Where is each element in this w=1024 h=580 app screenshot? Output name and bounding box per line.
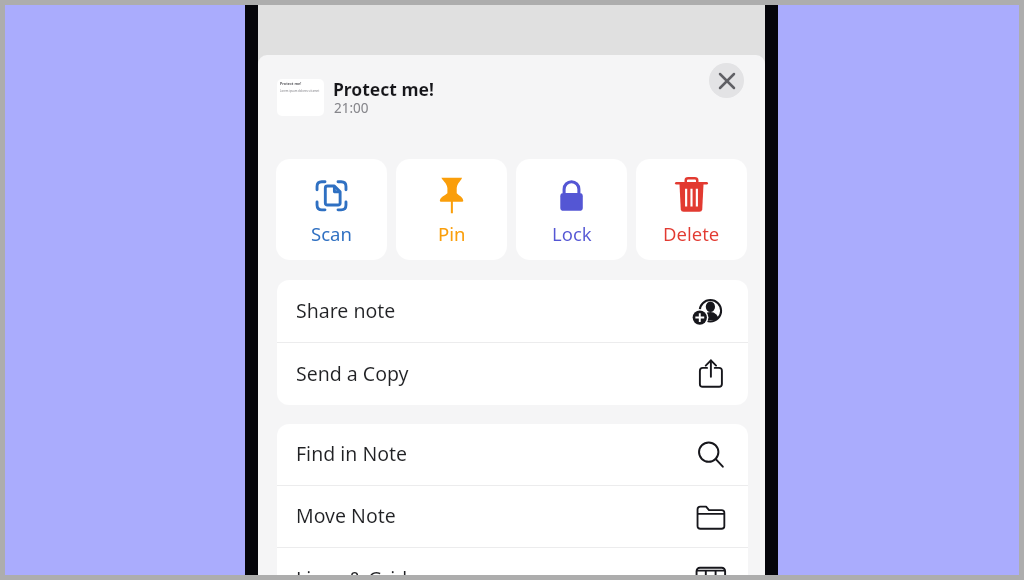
button[interactable]: Share note xyxy=(277,280,748,342)
staticText: Lines & Grids xyxy=(296,565,417,580)
staticText: Protect me! xyxy=(280,81,302,86)
staticText: Pin xyxy=(438,221,466,246)
button[interactable]: Send a Copy xyxy=(277,343,748,405)
button[interactable]: Move Note xyxy=(277,486,748,547)
staticText: Lorem ipsum dolores sit amet xyxy=(280,89,320,93)
button[interactable]: Delete xyxy=(636,159,747,260)
staticText: Send a Copy xyxy=(296,360,409,387)
staticText: Find in Note xyxy=(296,440,408,467)
button[interactable]: Close xyxy=(709,63,744,98)
button[interactable]: Lines & Grids xyxy=(277,548,748,580)
staticText: Protect me! xyxy=(333,77,434,101)
button[interactable]: Lock xyxy=(516,159,627,260)
button[interactable]: Find in Note xyxy=(277,424,748,485)
button[interactable]: Scan xyxy=(276,159,387,260)
staticText: Delete xyxy=(663,221,720,246)
staticText: 21:00 xyxy=(334,99,369,117)
staticText: Share note xyxy=(296,297,396,324)
staticText: Lock xyxy=(552,221,592,246)
staticText: Move Note xyxy=(296,502,396,529)
button[interactable]: Pin xyxy=(396,159,507,260)
staticText: Scan xyxy=(311,221,352,246)
